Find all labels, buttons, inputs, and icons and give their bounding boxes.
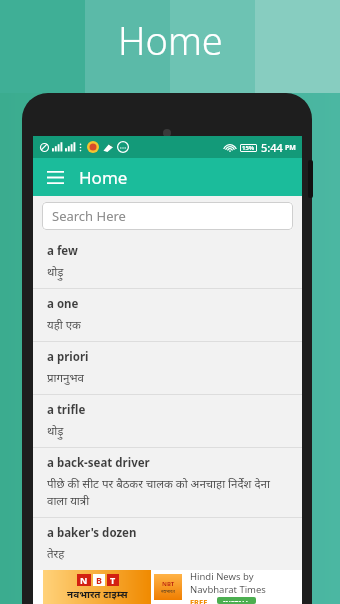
staticText: T xyxy=(110,574,116,586)
button[interactable]: a priori xyxy=(33,342,302,394)
button[interactable]: Advertisement: Hindi News by Navbharat T… xyxy=(33,570,302,604)
staticText: N xyxy=(80,574,88,586)
staticText: Home xyxy=(79,166,128,189)
staticText: 5:44 xyxy=(261,140,283,155)
staticText: नवभारत टाइम्स xyxy=(67,587,128,601)
staticText: तेरह xyxy=(47,546,65,562)
staticText: INSTALL xyxy=(223,599,250,602)
staticText: a baker's dozen xyxy=(47,525,137,541)
staticText: Hindi News by xyxy=(190,570,254,583)
staticText: थोड़ु xyxy=(47,423,64,439)
staticText: B xyxy=(96,574,102,586)
button[interactable]: a few xyxy=(33,236,302,288)
button[interactable]: a trifle xyxy=(33,395,302,447)
staticText: पीछे की सीट पर बैठकर चालक को अनचाहा निर्… xyxy=(47,476,290,509)
staticText: a trifle xyxy=(47,402,86,418)
staticText: FREE xyxy=(190,597,208,604)
staticText: 15% xyxy=(242,144,255,152)
staticText: थोड़ु xyxy=(47,264,64,280)
staticText: a one xyxy=(47,296,79,312)
staticText: नवभारत xyxy=(161,588,175,594)
staticText: प्रागनुभव xyxy=(47,370,84,386)
button[interactable]: Open navigation drawer xyxy=(39,161,71,193)
staticText: a priori xyxy=(47,349,89,365)
staticText: a back-seat driver xyxy=(47,455,150,471)
staticText: PM xyxy=(285,143,296,153)
staticText: Search Here xyxy=(52,207,126,225)
button[interactable]: a baker's dozen xyxy=(33,518,302,570)
button[interactable]: a back-seat driver xyxy=(33,448,302,517)
button[interactable]: Search Here xyxy=(42,202,293,230)
staticText: Navbharat Times xyxy=(190,583,266,596)
staticText: NBT xyxy=(162,580,175,588)
staticText: a few xyxy=(47,243,78,259)
button[interactable]: a one xyxy=(33,289,302,341)
staticText: Home xyxy=(118,14,223,66)
staticText: यही एक xyxy=(47,317,81,333)
